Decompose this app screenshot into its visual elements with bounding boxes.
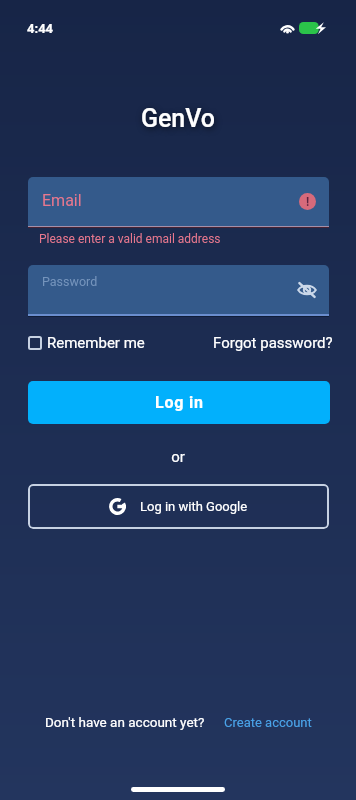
staticText: ! [306,195,310,209]
staticText: Forgot password? [213,334,333,352]
button[interactable]: Password [28,265,329,315]
staticText: Don't have an account yet? [45,714,205,730]
staticText: Create account [224,715,312,730]
staticText: Password [42,274,98,289]
button[interactable]: Show password [296,279,318,301]
staticText: Please enter a valid email address [39,232,221,246]
button[interactable]: Log in [28,381,330,424]
staticText: Log in with Google [140,499,248,514]
staticText: Remember me [47,334,145,352]
button[interactable]: Create account [224,715,312,730]
staticText: Log in [155,393,204,412]
staticText: Email [42,191,82,210]
staticText: or [0,448,356,466]
button[interactable]: Remember me [28,331,145,355]
button[interactable]: Forgot password? [213,331,333,355]
button[interactable]: Log in with Google [28,484,329,529]
staticText: GenVo [0,104,356,133]
button[interactable]: Email [28,177,329,227]
staticText: 4:44 [27,21,54,36]
